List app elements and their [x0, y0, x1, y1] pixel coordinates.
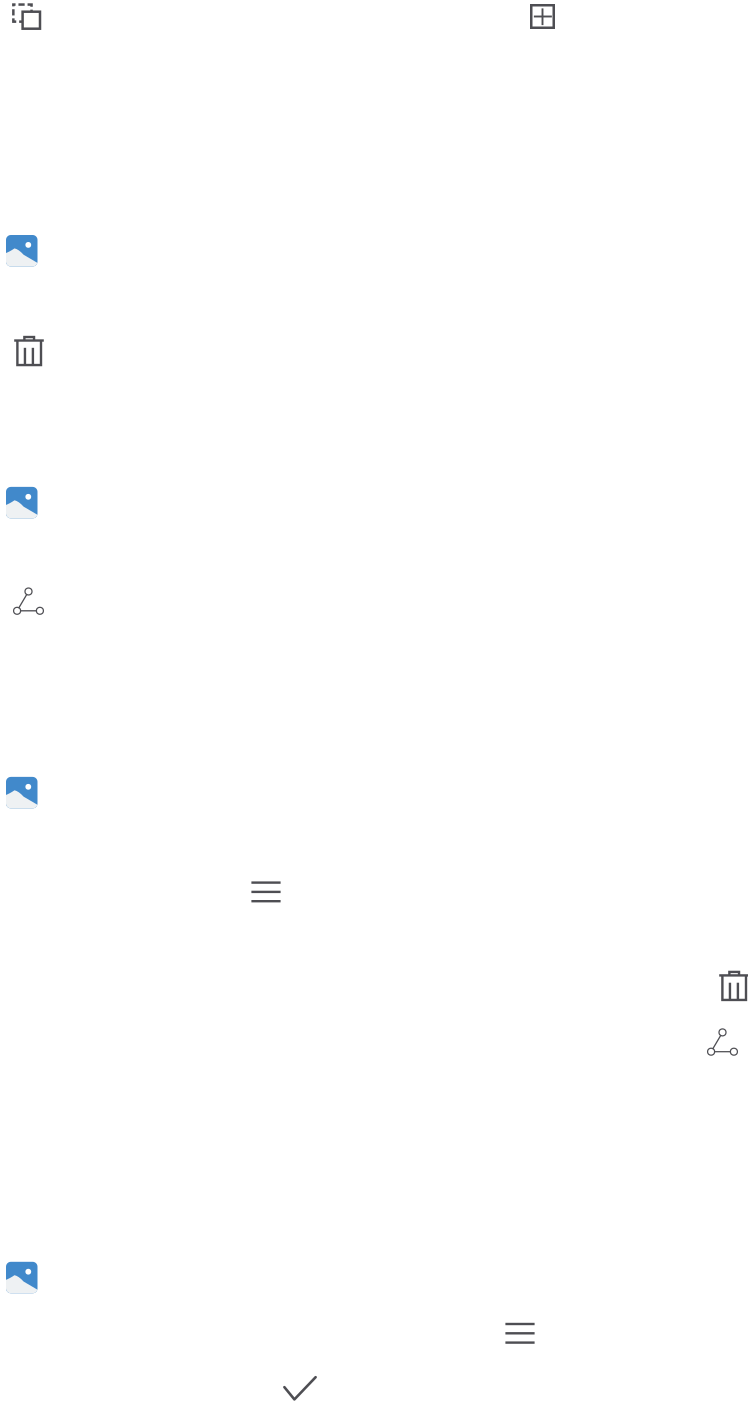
button[interactable]: Share — [13, 587, 44, 615]
button[interactable]: More — [251, 881, 281, 902]
button[interactable]: Duplicate — [0, 0, 41, 31]
button[interactable]: Delete — [14, 335, 44, 366]
button[interactable]: More — [505, 1323, 535, 1344]
button[interactable]: Confirm — [283, 1376, 317, 1401]
button[interactable]: Delete — [719, 970, 748, 1001]
button[interactable]: Share — [707, 1028, 738, 1056]
button[interactable]: New item — [530, 2, 748, 29]
